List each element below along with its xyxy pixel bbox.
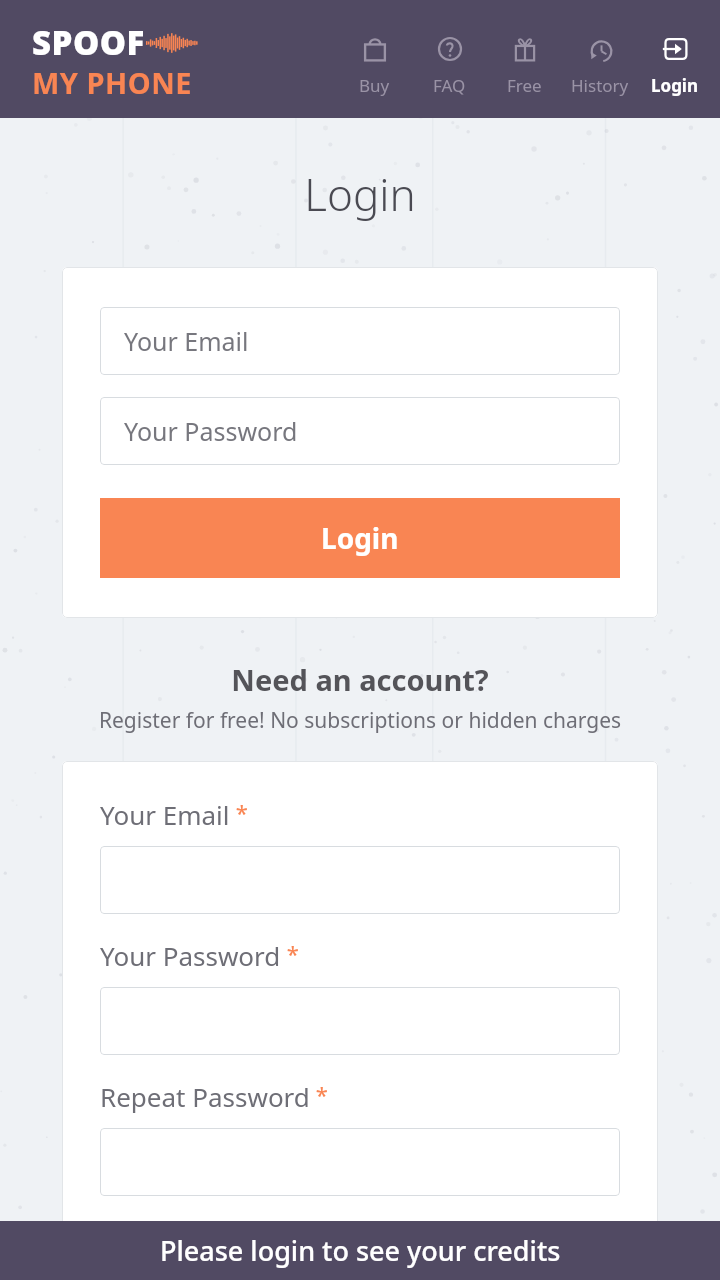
staticText: Your Email [124,324,249,358]
staticText: SPOOF [32,20,145,65]
staticText: Repeat Password [100,1079,310,1114]
staticText: Your First and Last Name [100,1220,406,1255]
button[interactable]: History [562,26,637,101]
staticText: Your Email [100,797,230,832]
staticText: Need an account? [0,660,720,699]
button[interactable] [100,987,620,1055]
button[interactable] [100,1128,620,1196]
button[interactable]: Spoof My Phone home [32,20,198,104]
button[interactable]: Login [637,26,712,101]
button[interactable]: Buy [337,26,412,101]
staticText: * [230,797,248,827]
button[interactable]: Free [487,26,562,101]
staticText: Login [0,164,720,224]
button[interactable]: Please login to see your credits [0,1221,720,1280]
staticText: * [281,938,299,968]
staticText: * [406,1220,424,1250]
staticText: Please login to see your credits [160,1232,561,1269]
staticText: MY PHONE [32,63,192,102]
staticText: Buy [359,74,390,97]
staticText: History [571,74,629,97]
button[interactable] [100,846,620,914]
button[interactable]: Your Password [100,397,620,465]
button[interactable]: Login [100,498,620,578]
staticText: * [310,1079,328,1109]
staticText: Your Password [100,938,281,973]
staticText: FAQ [433,74,466,97]
staticText: Your Password [124,414,298,448]
staticText: Login [321,519,399,557]
staticText: Free [507,74,542,97]
button[interactable]: Your Email [100,307,620,375]
button[interactable]: FAQ [412,26,487,101]
staticText: Login [651,74,699,97]
staticText: Register for free! No subscriptions or h… [0,706,720,735]
